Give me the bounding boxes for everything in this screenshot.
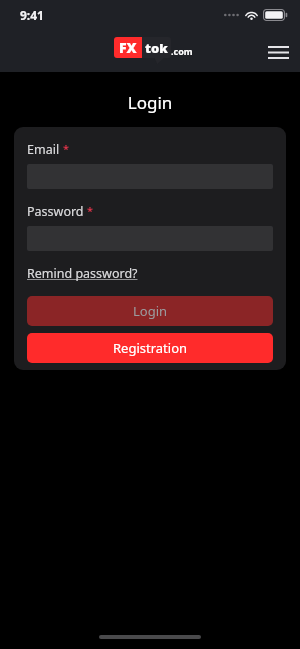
- staticText: tok: [145, 39, 168, 57]
- staticText: .com: [171, 45, 193, 57]
- button[interactable]: Login: [27, 296, 273, 326]
- button[interactable]: Menu: [264, 41, 292, 63]
- staticText: Password: [27, 203, 84, 220]
- button[interactable]: Remind password?: [27, 265, 138, 282]
- staticText: *: [63, 141, 69, 156]
- button[interactable]: Registration: [27, 333, 273, 363]
- staticText: Email: [27, 141, 60, 158]
- staticText: Remind password?: [27, 265, 138, 282]
- staticText: Registration: [113, 339, 188, 357]
- staticText: 9:41: [20, 7, 44, 23]
- staticText: Login: [0, 91, 300, 114]
- staticText: Login: [133, 302, 168, 320]
- staticText: FX: [119, 38, 137, 57]
- staticText: *: [87, 203, 93, 218]
